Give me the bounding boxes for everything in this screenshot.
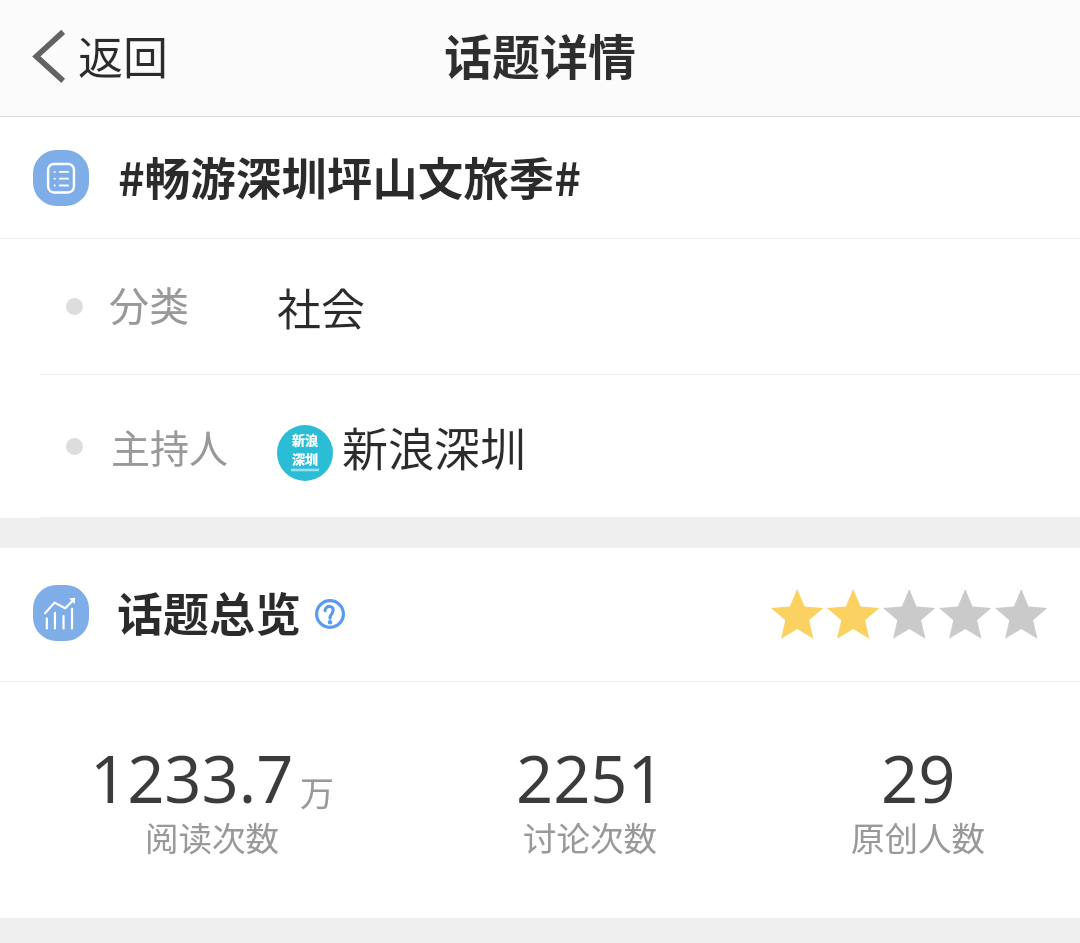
staticText: 社会 [277,275,365,339]
button[interactable]: 1233.7 [0,682,424,918]
button[interactable]: #畅游深圳坪山文旅季# [0,117,1080,238]
staticText: 新浪 [292,430,319,449]
button[interactable]: 分类 [0,239,1080,374]
other: Back [30,29,66,89]
button[interactable]: Rating 2 of 5 [771,590,1048,640]
staticText: #畅游深圳坪山文旅季# [118,143,582,209]
button[interactable]: Help [306,590,354,638]
staticText: 1233.7 [90,734,294,823]
staticText: 原创人数 [851,812,985,861]
staticText: 新浪深圳 [342,413,526,480]
button[interactable]: Back [0,26,191,91]
staticText: 讨论次数 [523,812,657,861]
button[interactable]: 主持人 [0,375,1080,517]
staticText: 深圳 [292,449,319,468]
staticText: 万 [300,767,334,816]
button[interactable]: 话题总览 [0,548,1080,681]
button[interactable]: 2251 [424,682,756,918]
staticText: 话题总览 [117,578,301,645]
staticText: 分类 [109,275,189,333]
staticText: 29 [881,734,956,823]
button[interactable]: 29 [756,682,1080,918]
staticText: 返回 [78,23,169,88]
staticText: 2251 [516,734,665,823]
staticText: 话题详情 [444,19,637,89]
staticText: 阅读次数 [145,812,279,861]
staticText: 主持人 [111,418,229,474]
